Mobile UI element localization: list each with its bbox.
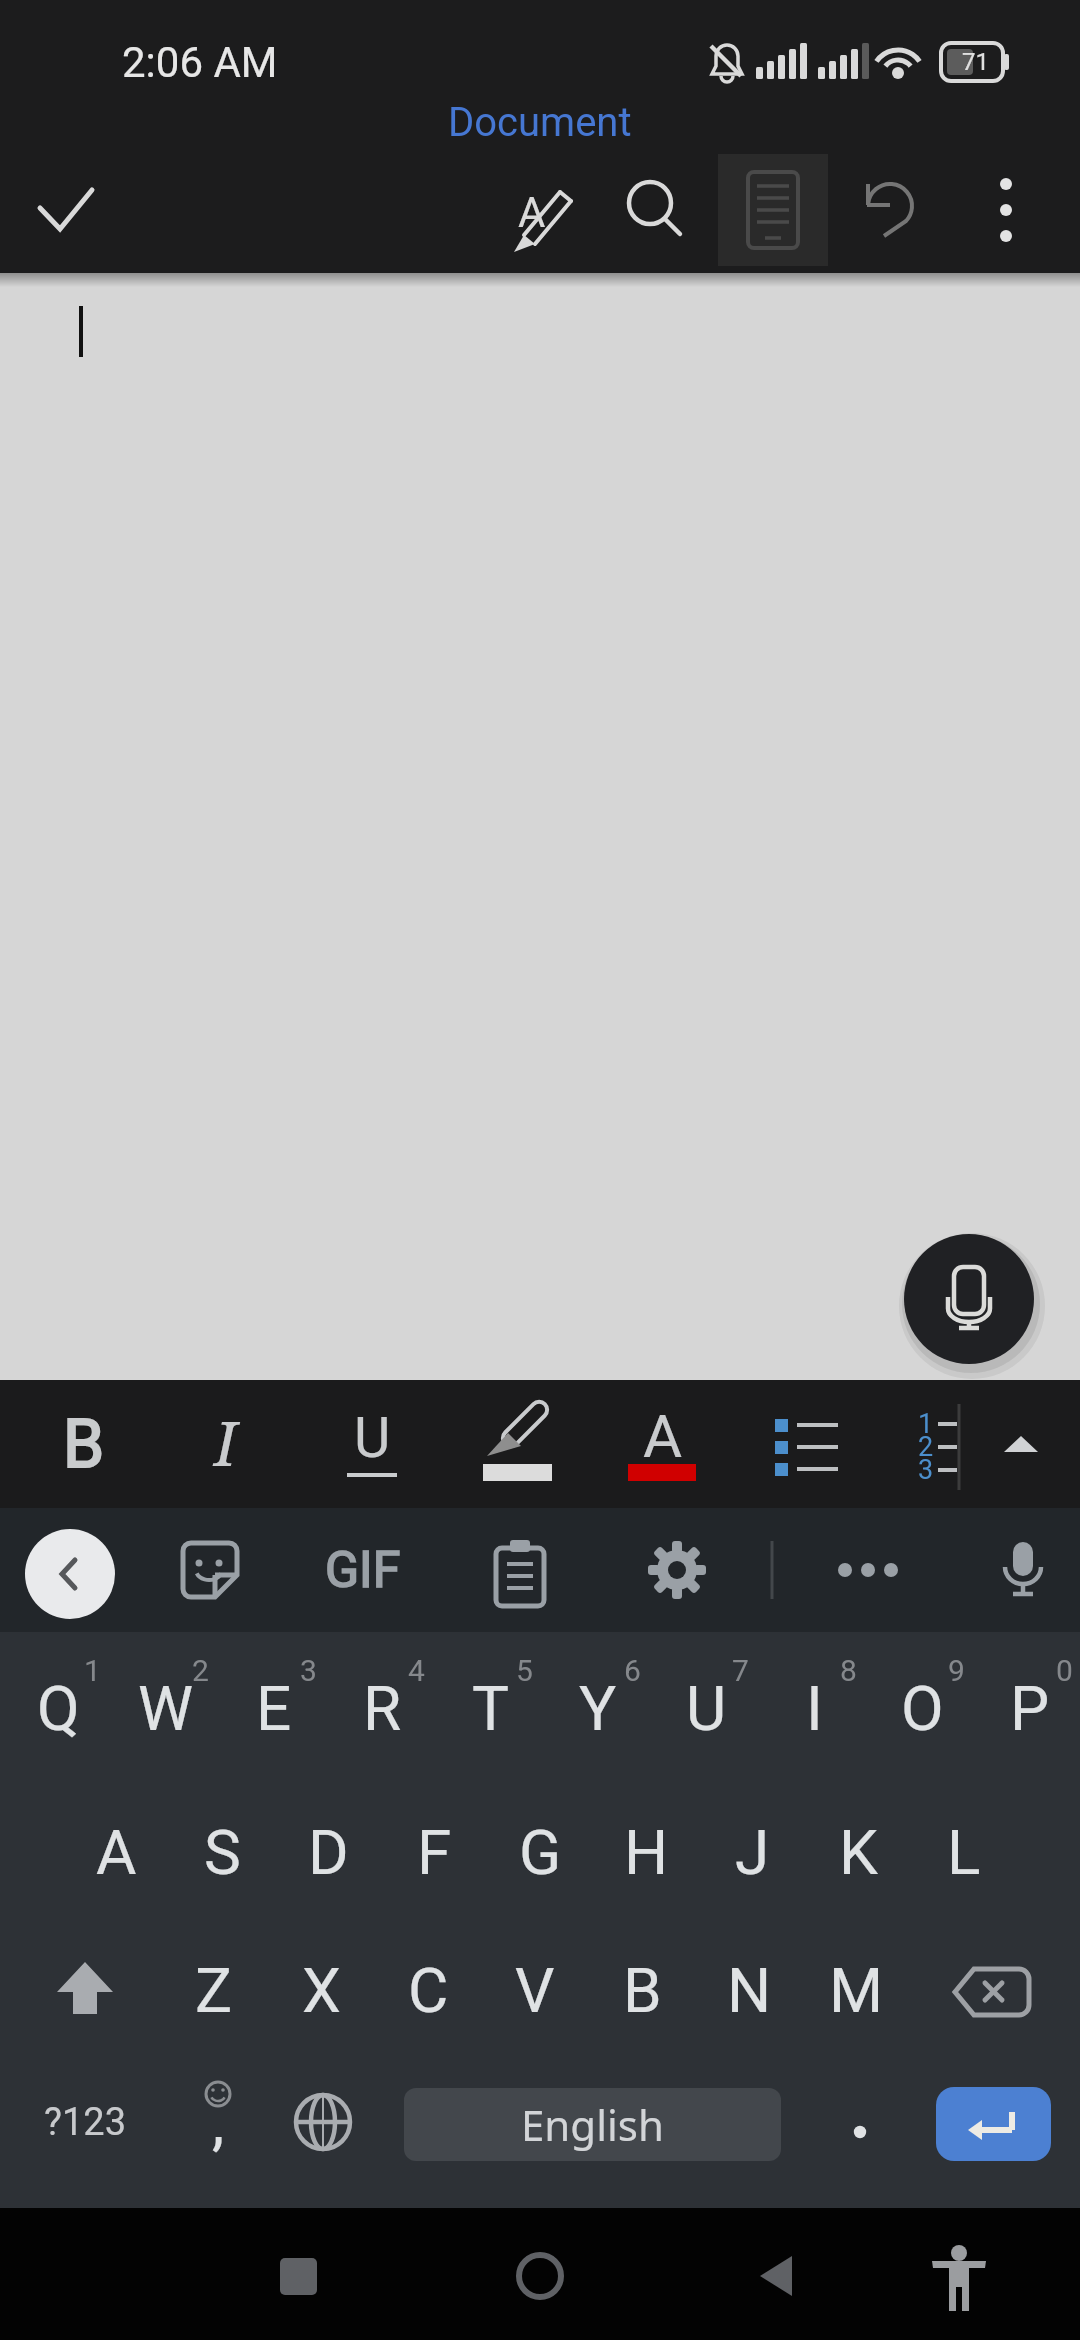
button[interactable] bbox=[275, 1776, 381, 1920]
staticText: G bbox=[519, 1816, 562, 1889]
button[interactable] bbox=[961, 165, 1051, 255]
button[interactable]: I bbox=[125, 1382, 325, 1502]
button[interactable] bbox=[25, 1529, 115, 1619]
staticText: 2 bbox=[918, 1431, 934, 1463]
staticText: V bbox=[515, 1954, 555, 2027]
button[interactable] bbox=[381, 1776, 487, 1920]
button[interactable] bbox=[823, 1525, 913, 1615]
staticText: Z bbox=[195, 1954, 233, 2027]
button[interactable] bbox=[760, 1632, 868, 1776]
button[interactable] bbox=[63, 1776, 169, 1920]
button[interactable] bbox=[845, 165, 935, 255]
button[interactable] bbox=[220, 1632, 328, 1776]
staticText: 4 bbox=[408, 1653, 425, 1688]
button[interactable] bbox=[487, 1776, 593, 1920]
button[interactable]: English bbox=[404, 2088, 781, 2161]
staticText: F bbox=[417, 1816, 452, 1889]
button[interactable] bbox=[718, 154, 828, 266]
staticText: English bbox=[521, 2096, 664, 2153]
staticText: J bbox=[735, 1816, 770, 1889]
staticText: B bbox=[623, 1954, 662, 2027]
button[interactable] bbox=[436, 1632, 544, 1776]
staticText: T bbox=[472, 1672, 509, 1745]
staticText: R bbox=[363, 1672, 402, 1745]
staticText: 71 bbox=[962, 48, 989, 76]
button[interactable]: A bbox=[563, 1376, 763, 1496]
button[interactable] bbox=[740, 2232, 812, 2320]
staticText: C bbox=[408, 1954, 449, 2027]
staticText: 3 bbox=[918, 1454, 934, 1486]
button[interactable] bbox=[470, 1400, 570, 1490]
button[interactable] bbox=[980, 1400, 1060, 1490]
button[interactable] bbox=[475, 1525, 565, 1615]
staticText: A bbox=[96, 1816, 137, 1889]
button[interactable] bbox=[696, 1920, 803, 2064]
button[interactable] bbox=[268, 1920, 375, 2064]
staticText: 1 bbox=[918, 1408, 934, 1440]
staticText: U bbox=[686, 1672, 727, 1745]
staticText: N bbox=[727, 1954, 772, 2027]
button[interactable]: GIF bbox=[263, 1510, 463, 1630]
staticText: H bbox=[624, 1816, 669, 1889]
button[interactable] bbox=[760, 1400, 860, 1490]
button[interactable] bbox=[482, 1920, 589, 2064]
button[interactable] bbox=[868, 1632, 976, 1776]
button[interactable] bbox=[269, 2064, 377, 2208]
button[interactable] bbox=[652, 1632, 760, 1776]
button[interactable] bbox=[911, 1776, 1017, 1920]
button[interactable] bbox=[593, 1776, 699, 1920]
button[interactable] bbox=[161, 1920, 268, 2064]
button[interactable] bbox=[925, 2232, 997, 2320]
staticText: 0 bbox=[1056, 1653, 1073, 1688]
button[interactable] bbox=[20, 165, 110, 255]
button[interactable] bbox=[904, 1234, 1034, 1364]
staticText: P bbox=[1010, 1672, 1050, 1745]
staticText: E bbox=[256, 1672, 292, 1745]
button[interactable] bbox=[610, 165, 700, 255]
button[interactable] bbox=[976, 1632, 1080, 1776]
staticText: ?123 bbox=[44, 2100, 127, 2145]
staticText: I bbox=[214, 1400, 237, 1484]
staticText: 6 bbox=[624, 1653, 641, 1688]
staticText: M bbox=[829, 1954, 884, 2027]
button[interactable] bbox=[169, 1776, 275, 1920]
button[interactable] bbox=[375, 1920, 482, 2064]
staticText: Y bbox=[579, 1672, 617, 1745]
button[interactable] bbox=[544, 1632, 652, 1776]
staticText: S bbox=[204, 1816, 241, 1889]
button[interactable] bbox=[632, 1525, 722, 1615]
button[interactable]: Document bbox=[440, 62, 640, 182]
staticText: 1 bbox=[84, 1653, 101, 1688]
staticText: L bbox=[947, 1816, 981, 1889]
staticText: O bbox=[901, 1672, 944, 1745]
staticText: Q bbox=[37, 1672, 80, 1745]
staticText: D bbox=[308, 1816, 349, 1889]
staticText: 7 bbox=[732, 1653, 749, 1688]
button[interactable] bbox=[4, 1632, 112, 1776]
button[interactable]: , bbox=[118, 2062, 318, 2182]
button[interactable] bbox=[900, 1400, 980, 1490]
staticText: 3 bbox=[300, 1653, 317, 1688]
button[interactable] bbox=[328, 1632, 436, 1776]
staticText: A bbox=[643, 1401, 683, 1471]
button[interactable] bbox=[699, 1776, 805, 1920]
button[interactable] bbox=[112, 1632, 220, 1776]
button[interactable] bbox=[978, 1525, 1068, 1615]
button[interactable]: A bbox=[432, 152, 632, 272]
button[interactable] bbox=[165, 1525, 255, 1615]
staticText: K bbox=[839, 1816, 878, 1889]
button[interactable] bbox=[803, 1920, 910, 2064]
staticText: W bbox=[138, 1672, 194, 1745]
staticText: 2:06 AM bbox=[122, 38, 278, 87]
button[interactable] bbox=[806, 2064, 914, 2208]
button[interactable] bbox=[936, 2087, 1051, 2161]
button[interactable] bbox=[805, 1776, 911, 1920]
button[interactable] bbox=[31, 2064, 139, 2208]
button[interactable] bbox=[589, 1920, 696, 2064]
button[interactable]: B bbox=[0, 1384, 184, 1504]
staticText: A bbox=[518, 188, 546, 237]
staticText: 9 bbox=[948, 1653, 965, 1688]
button[interactable]: U bbox=[272, 1378, 472, 1498]
button[interactable] bbox=[504, 2232, 576, 2320]
button[interactable] bbox=[262, 2232, 334, 2320]
